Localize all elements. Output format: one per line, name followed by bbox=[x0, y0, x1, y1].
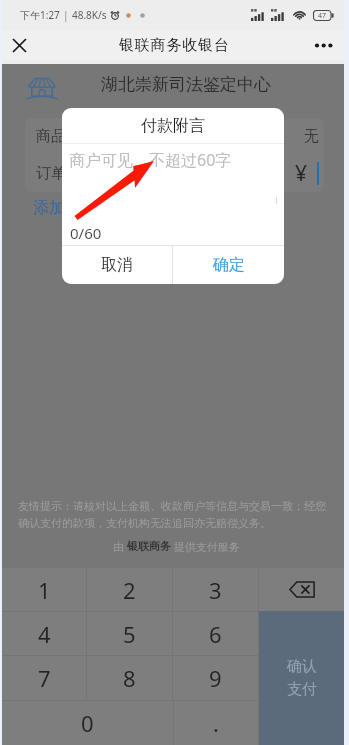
staticText: . bbox=[213, 708, 219, 738]
staticText: 0 bbox=[81, 708, 94, 738]
button[interactable]: 确认 支付 bbox=[259, 611, 344, 745]
staticText: 1 bbox=[38, 575, 51, 605]
staticText: 友情提示：请核对以上金额、收款商户等信息与交易一致；经您确认支付的款项，支付机构… bbox=[18, 499, 334, 530]
button[interactable]: More options bbox=[312, 32, 338, 58]
staticText: 银联商务 bbox=[127, 539, 171, 553]
staticText: 9 bbox=[209, 663, 222, 693]
staticText: | bbox=[63, 8, 69, 22]
button[interactable]: 5 bbox=[87, 612, 172, 655]
staticText: 下午1:27 bbox=[20, 8, 60, 22]
button[interactable]: 确定 bbox=[173, 246, 284, 284]
button[interactable]: 1 bbox=[2, 568, 86, 611]
staticText: 湖北崇新司法鉴定中心 bbox=[101, 74, 271, 95]
staticText: 0/60 bbox=[70, 223, 102, 243]
staticText: 无 bbox=[304, 127, 319, 146]
staticText: 确定 bbox=[213, 255, 245, 275]
staticText: 6 bbox=[209, 619, 222, 649]
staticText: 商户可见、不超过60字 bbox=[69, 149, 232, 171]
staticText: 47 bbox=[318, 11, 327, 21]
staticText: 订单 bbox=[36, 164, 66, 183]
staticText: 由 bbox=[113, 539, 127, 554]
button[interactable]: 取消 bbox=[62, 246, 172, 284]
staticText: 4 bbox=[38, 619, 51, 649]
staticText: ¥ bbox=[295, 159, 308, 188]
staticText: 8 bbox=[123, 663, 136, 693]
button[interactable]: Close bbox=[6, 32, 32, 58]
button[interactable]: . bbox=[174, 701, 258, 745]
button[interactable]: 6 bbox=[173, 612, 258, 655]
staticText: 添加备注 bbox=[33, 198, 97, 218]
button[interactable]: 8 bbox=[87, 656, 172, 700]
button[interactable]: 添加备注 bbox=[33, 198, 97, 218]
button[interactable]: 0 bbox=[2, 701, 173, 745]
staticText: 银联商务收银台 bbox=[119, 36, 230, 55]
staticText: 5 bbox=[123, 619, 136, 649]
button[interactable]: 9 bbox=[173, 656, 258, 700]
button[interactable]: 4 bbox=[2, 612, 86, 655]
staticText: 付款附言 bbox=[141, 116, 205, 136]
button[interactable]: 7 bbox=[2, 656, 86, 700]
staticText: 取消 bbox=[101, 255, 133, 275]
staticText: 提供支付服务 bbox=[171, 539, 240, 554]
button[interactable]: 2 bbox=[87, 568, 172, 611]
staticText: 48.8K/s bbox=[72, 8, 107, 22]
staticText: 确认 支付 bbox=[287, 657, 317, 699]
staticText: 3 bbox=[209, 575, 222, 605]
staticText: 7 bbox=[38, 663, 51, 693]
staticText: 2 bbox=[123, 575, 136, 605]
button[interactable]: 3 bbox=[173, 568, 258, 611]
button[interactable]: Backspace bbox=[259, 568, 344, 611]
staticText: 商品 bbox=[36, 127, 66, 146]
button[interactable]: 商品 bbox=[36, 118, 319, 155]
